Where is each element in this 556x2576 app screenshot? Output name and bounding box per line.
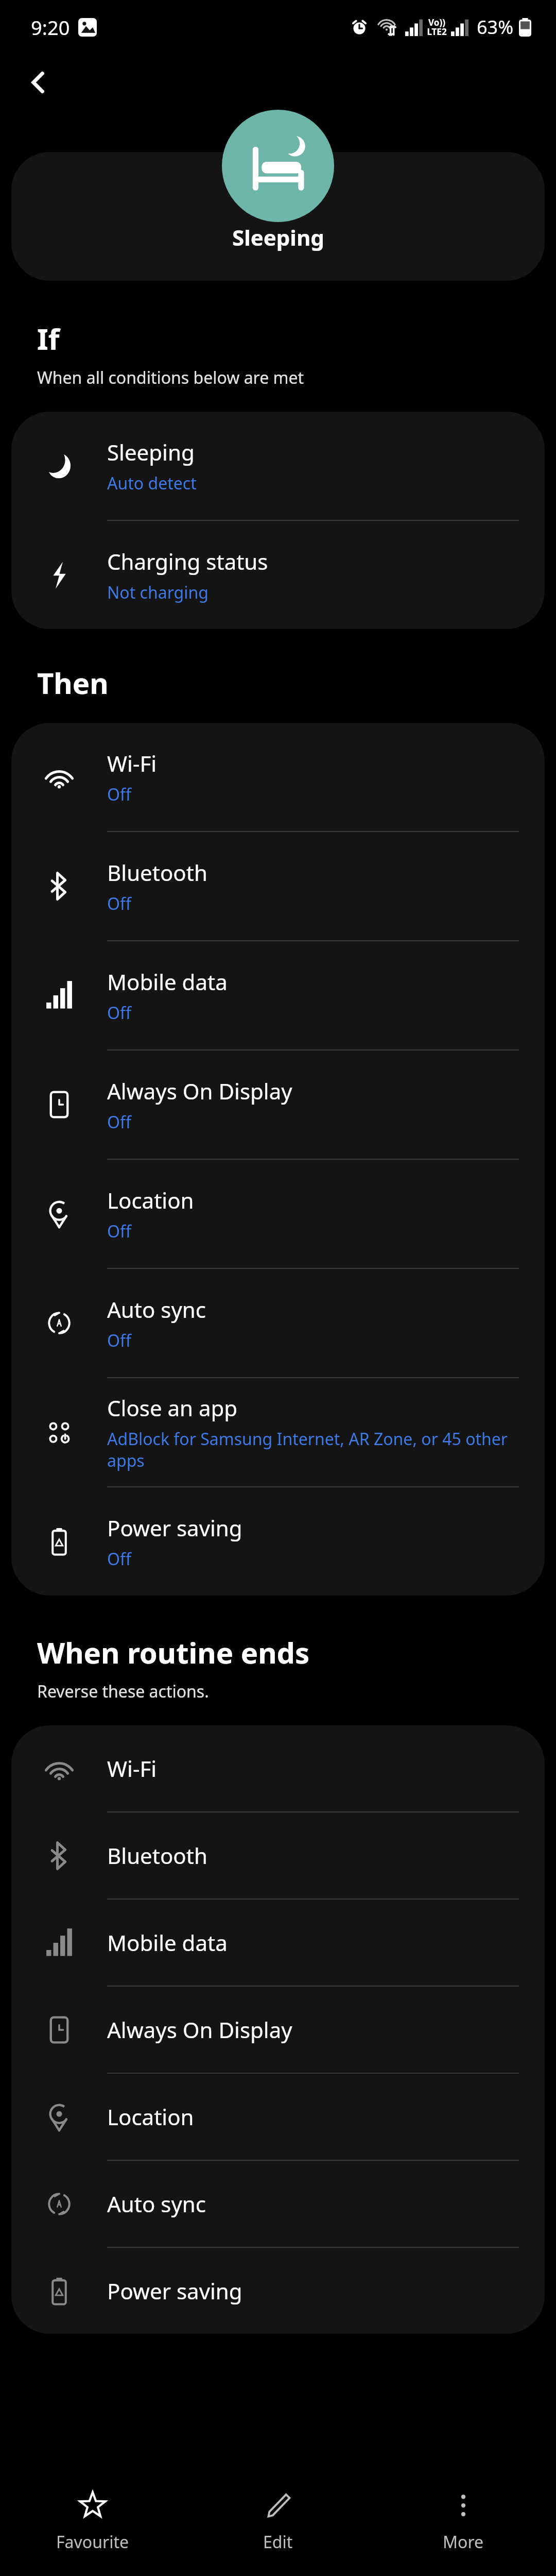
staticText: Favourite [56, 2531, 129, 2553]
staticText: Close an app [107, 1393, 238, 1422]
button[interactable]: More [371, 2468, 556, 2576]
staticText: Location [107, 1185, 194, 1215]
staticText: Wi-Fi [107, 749, 157, 778]
staticText: Always On Display [107, 1076, 292, 1106]
button[interactable]: Bluetooth [11, 1812, 545, 1899]
button[interactable]: Wi-Fi [11, 723, 545, 831]
button[interactable]: Close an app [11, 1378, 545, 1486]
staticText: Location [107, 2102, 194, 2131]
staticText: Sleeping [107, 437, 195, 467]
button[interactable]: Always On Display [11, 1050, 545, 1159]
button[interactable]: Always On Display [11, 1987, 545, 2073]
staticText: Edit [263, 2531, 293, 2553]
button[interactable]: Wi-Fi [11, 1725, 545, 1811]
staticText: Off [107, 783, 132, 806]
button[interactable]: Sleeping [11, 412, 545, 520]
staticText: More [443, 2531, 484, 2553]
staticText: Then [37, 663, 109, 702]
staticText: Off [107, 1329, 132, 1352]
button[interactable]: Bluetooth [11, 832, 545, 940]
staticText: Off [107, 1220, 132, 1243]
staticText: Not charging [107, 581, 208, 604]
button[interactable]: Location [11, 1160, 545, 1268]
staticText: Charging status [107, 547, 268, 576]
button[interactable]: Sleeping [11, 152, 545, 281]
button[interactable]: Power saving [11, 1487, 545, 1596]
button[interactable]: Mobile data [11, 1900, 545, 1986]
staticText: Bluetooth [107, 1841, 207, 1870]
staticText: Auto detect [107, 472, 197, 495]
button[interactable]: Edit [185, 2468, 371, 2576]
staticText: Power saving [107, 2276, 242, 2306]
staticText: If [37, 319, 60, 358]
staticText: Off [107, 1548, 132, 1570]
button[interactable]: Power saving [11, 2248, 545, 2334]
staticText: Power saving [107, 1513, 242, 1543]
button[interactable]: Location [11, 2074, 545, 2160]
staticText: Auto sync [107, 1295, 206, 1324]
button[interactable]: Auto sync [11, 1269, 545, 1377]
staticText: AdBlock for Samsung Internet, AR Zone, o… [107, 1428, 516, 1471]
staticText: Off [107, 1002, 132, 1024]
staticText: When all conditions below are met [37, 366, 304, 389]
staticText: Wi-Fi [107, 1754, 157, 1783]
staticText: When routine ends [37, 1633, 310, 1672]
staticText: Sleeping [232, 223, 324, 252]
staticText: Auto sync [107, 2189, 206, 2218]
button[interactable]: Back [15, 59, 62, 106]
staticText: Off [107, 892, 132, 915]
button[interactable]: Charging status [11, 521, 545, 629]
staticText: 9:20 [31, 14, 70, 41]
button[interactable]: Favourite [0, 2468, 185, 2576]
staticText: Mobile data [107, 967, 228, 996]
staticText: Bluetooth [107, 858, 207, 887]
staticText: Vo)) LTE2 [427, 16, 447, 38]
staticText: 63% [477, 14, 514, 40]
staticText: Always On Display [107, 2015, 292, 2044]
staticText: Reverse these actions. [37, 1680, 209, 1703]
button[interactable]: Auto sync [11, 2161, 545, 2247]
button[interactable]: Mobile data [11, 941, 545, 1049]
staticText: Mobile data [107, 1928, 228, 1957]
staticText: Off [107, 1111, 132, 1133]
